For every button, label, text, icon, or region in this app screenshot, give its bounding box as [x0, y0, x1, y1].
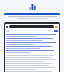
button[interactable] — [6, 34, 56, 35]
button[interactable]: Apply — [54, 30, 58, 32]
button[interactable]: Get started — [55, 26, 58, 28]
button[interactable]: Search — [9, 25, 54, 28]
button[interactable] — [6, 42, 56, 43]
button[interactable] — [6, 38, 53, 39]
button[interactable]: Menu — [6, 26, 8, 28]
button[interactable] — [6, 46, 52, 47]
button[interactable]: App logo — [29, 4, 36, 10]
button[interactable] — [6, 50, 54, 51]
